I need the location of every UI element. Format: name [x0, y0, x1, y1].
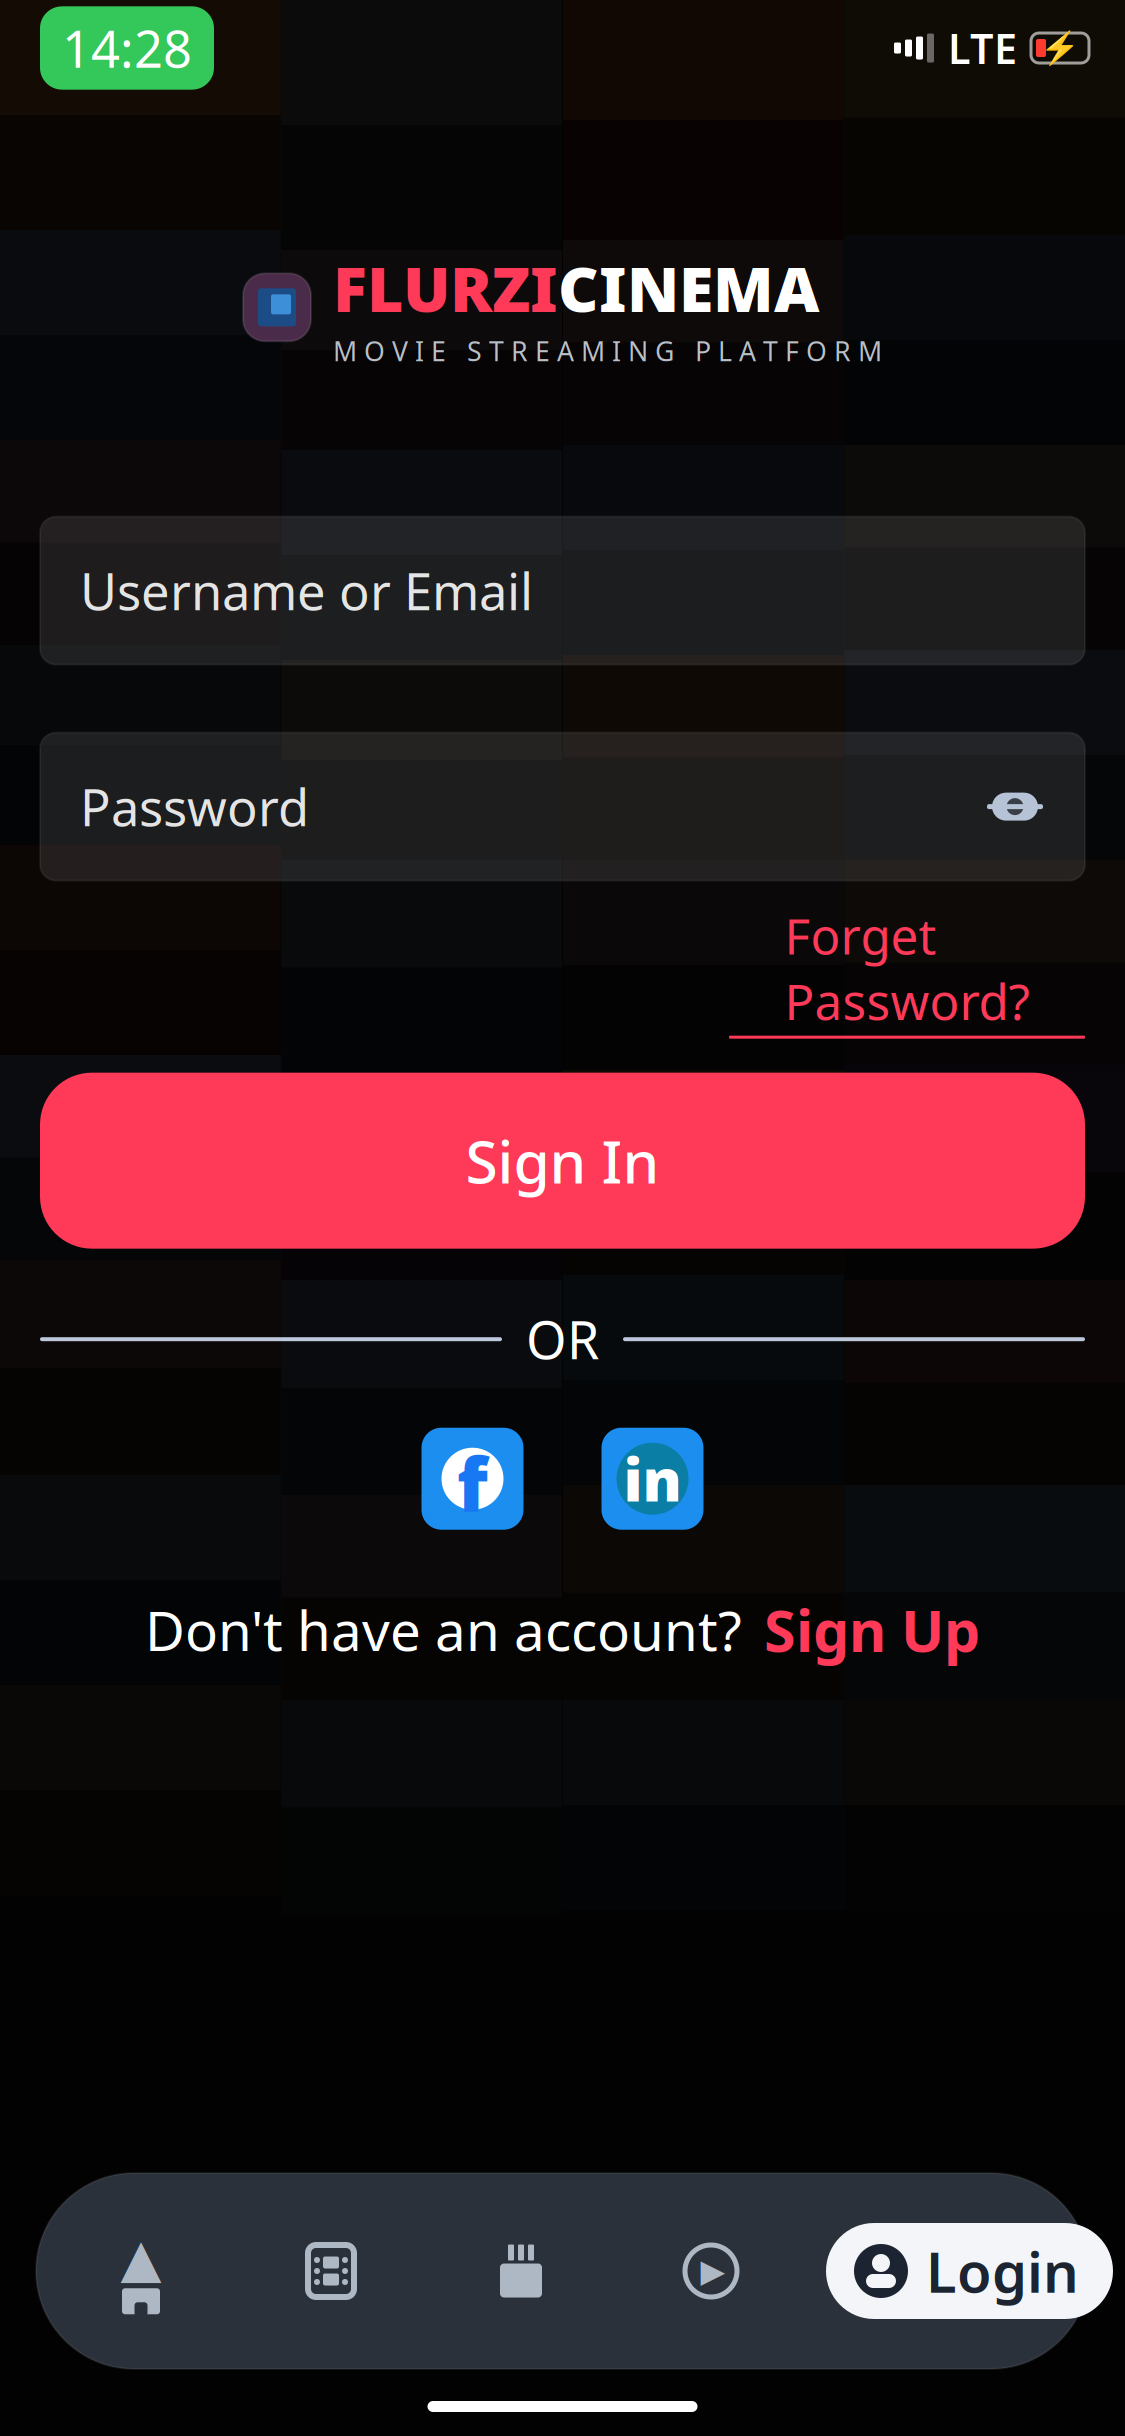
staticText: ▶ [700, 2253, 725, 2289]
button[interactable]: Sign in with LinkedIn [601, 1428, 703, 1530]
button[interactable]: Sign Up [764, 1592, 980, 1668]
staticText: ▲ [120, 2228, 161, 2288]
staticText: Password [80, 773, 309, 840]
button[interactable]: Shows [426, 2211, 616, 2331]
staticText: Login [926, 2234, 1079, 2308]
staticText: Forget Password? [784, 903, 1029, 1034]
staticText: FLURZI [333, 246, 558, 329]
staticText: OR [526, 1305, 599, 1374]
staticText: ⚡ [1040, 30, 1080, 66]
staticText: Sign In [465, 1122, 659, 1200]
button[interactable]: Live TV [616, 2211, 806, 2331]
staticText: f [457, 1433, 488, 1532]
staticText: CINEMA [558, 246, 819, 329]
staticText: Username or Email [80, 557, 533, 624]
staticText: 14:28 [62, 14, 192, 82]
staticText: Don't have an account? [145, 1593, 742, 1666]
button[interactable]: Sign In [40, 1073, 1085, 1249]
button[interactable]: Login [826, 2223, 1113, 2319]
button[interactable]: Forget Password? [729, 903, 1085, 1039]
button[interactable]: Movies [236, 2211, 426, 2331]
button[interactable]: Sign in with Facebook [421, 1428, 523, 1530]
staticText: Sign Up [764, 1592, 980, 1668]
staticText: in [623, 1440, 681, 1518]
staticText: LTE [948, 21, 1017, 75]
button[interactable]: Home [46, 2211, 236, 2331]
staticText: M O V I E S T R E A M I N G P L A T F O … [333, 333, 882, 369]
button[interactable]: Show password [977, 769, 1053, 845]
